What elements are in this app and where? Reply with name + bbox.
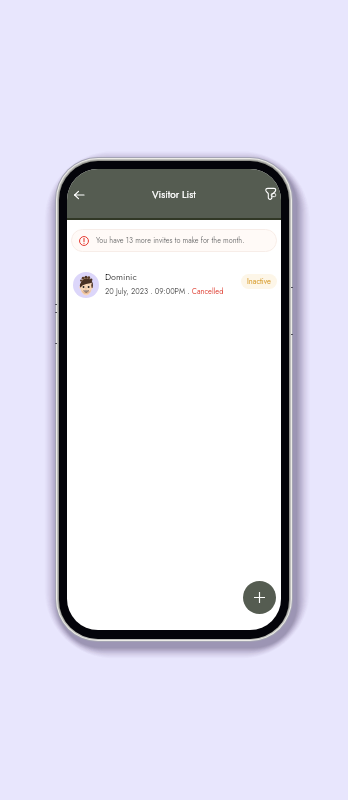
button[interactable]: Inactive bbox=[241, 274, 277, 289]
button[interactable]: Add visitor bbox=[243, 581, 276, 614]
button[interactable]: Dominic bbox=[67, 265, 281, 299]
staticText: Inactive bbox=[247, 276, 271, 287]
staticText: 20 July, 2023 . 09:00PM . Cancelled bbox=[105, 286, 224, 297]
button[interactable]: You have 13 more invites to make for the… bbox=[71, 229, 277, 252]
button[interactable]: Filter bbox=[259, 183, 281, 205]
button[interactable]: Back bbox=[68, 184, 90, 206]
staticText: Visitor List bbox=[152, 187, 196, 201]
staticText: You have 13 more invites to make for the… bbox=[96, 235, 245, 246]
staticText: Dominic bbox=[105, 270, 137, 283]
